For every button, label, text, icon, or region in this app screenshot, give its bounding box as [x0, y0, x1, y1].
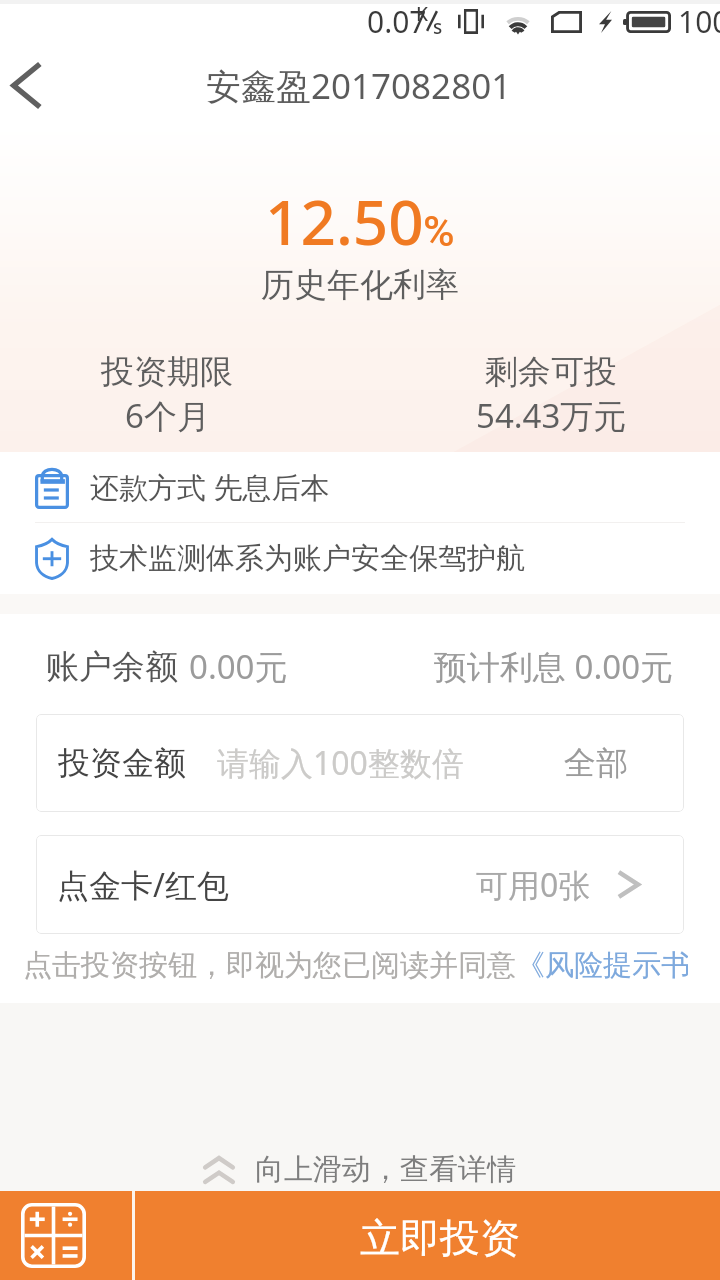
button[interactable]: 点击投资按钮，即视为您已阅读并同意《风险提示书》	[23, 947, 688, 984]
staticText: 全部	[564, 743, 628, 783]
staticText: 立即投资	[360, 1213, 520, 1263]
staticText: s	[433, 14, 443, 40]
button[interactable]: 技术监测体系为账户安全保驾护航	[0, 523, 720, 594]
staticText: K	[416, 1, 429, 27]
staticText: 0.00元	[189, 644, 288, 689]
button[interactable]: Calculator	[0, 1191, 132, 1280]
staticText: 安鑫盈2017082801	[206, 62, 512, 110]
staticText: 可用0张	[476, 863, 591, 907]
staticText: 0.07	[367, 1, 427, 42]
staticText: 投资金额	[58, 743, 186, 783]
staticText: 技术监测体系为账户安全保驾护航	[90, 540, 525, 577]
staticText: 请输入100整数倍	[217, 741, 464, 785]
button[interactable]: 投资金额	[36, 714, 684, 812]
button[interactable]: Back	[0, 46, 52, 125]
staticText: 点金卡/红包	[57, 863, 229, 907]
staticText: 还款方式 先息后本	[90, 467, 330, 507]
button[interactable]: 立即投资	[135, 1191, 720, 1280]
staticText: 历史年化利率	[261, 264, 459, 306]
staticText: 向上滑动，查看详情	[255, 1151, 516, 1188]
staticText: 账户余额	[46, 646, 178, 688]
staticText: 剩余可投	[485, 351, 617, 393]
button[interactable]: 还款方式 先息后本	[0, 452, 720, 522]
staticText: 投资期限	[101, 351, 233, 393]
button[interactable]: 点金卡/红包	[36, 835, 684, 934]
staticText: %	[423, 206, 455, 256]
staticText: 点击投资按钮，即视为您已阅读并同意《风险提示书》	[23, 947, 688, 984]
staticText: 6个月	[125, 393, 210, 438]
staticText: 54.43万元	[476, 393, 627, 438]
staticText: 预计利息 0.00元	[434, 644, 674, 689]
staticText: 12.50	[265, 179, 424, 263]
staticText: 100	[678, 1, 720, 42]
